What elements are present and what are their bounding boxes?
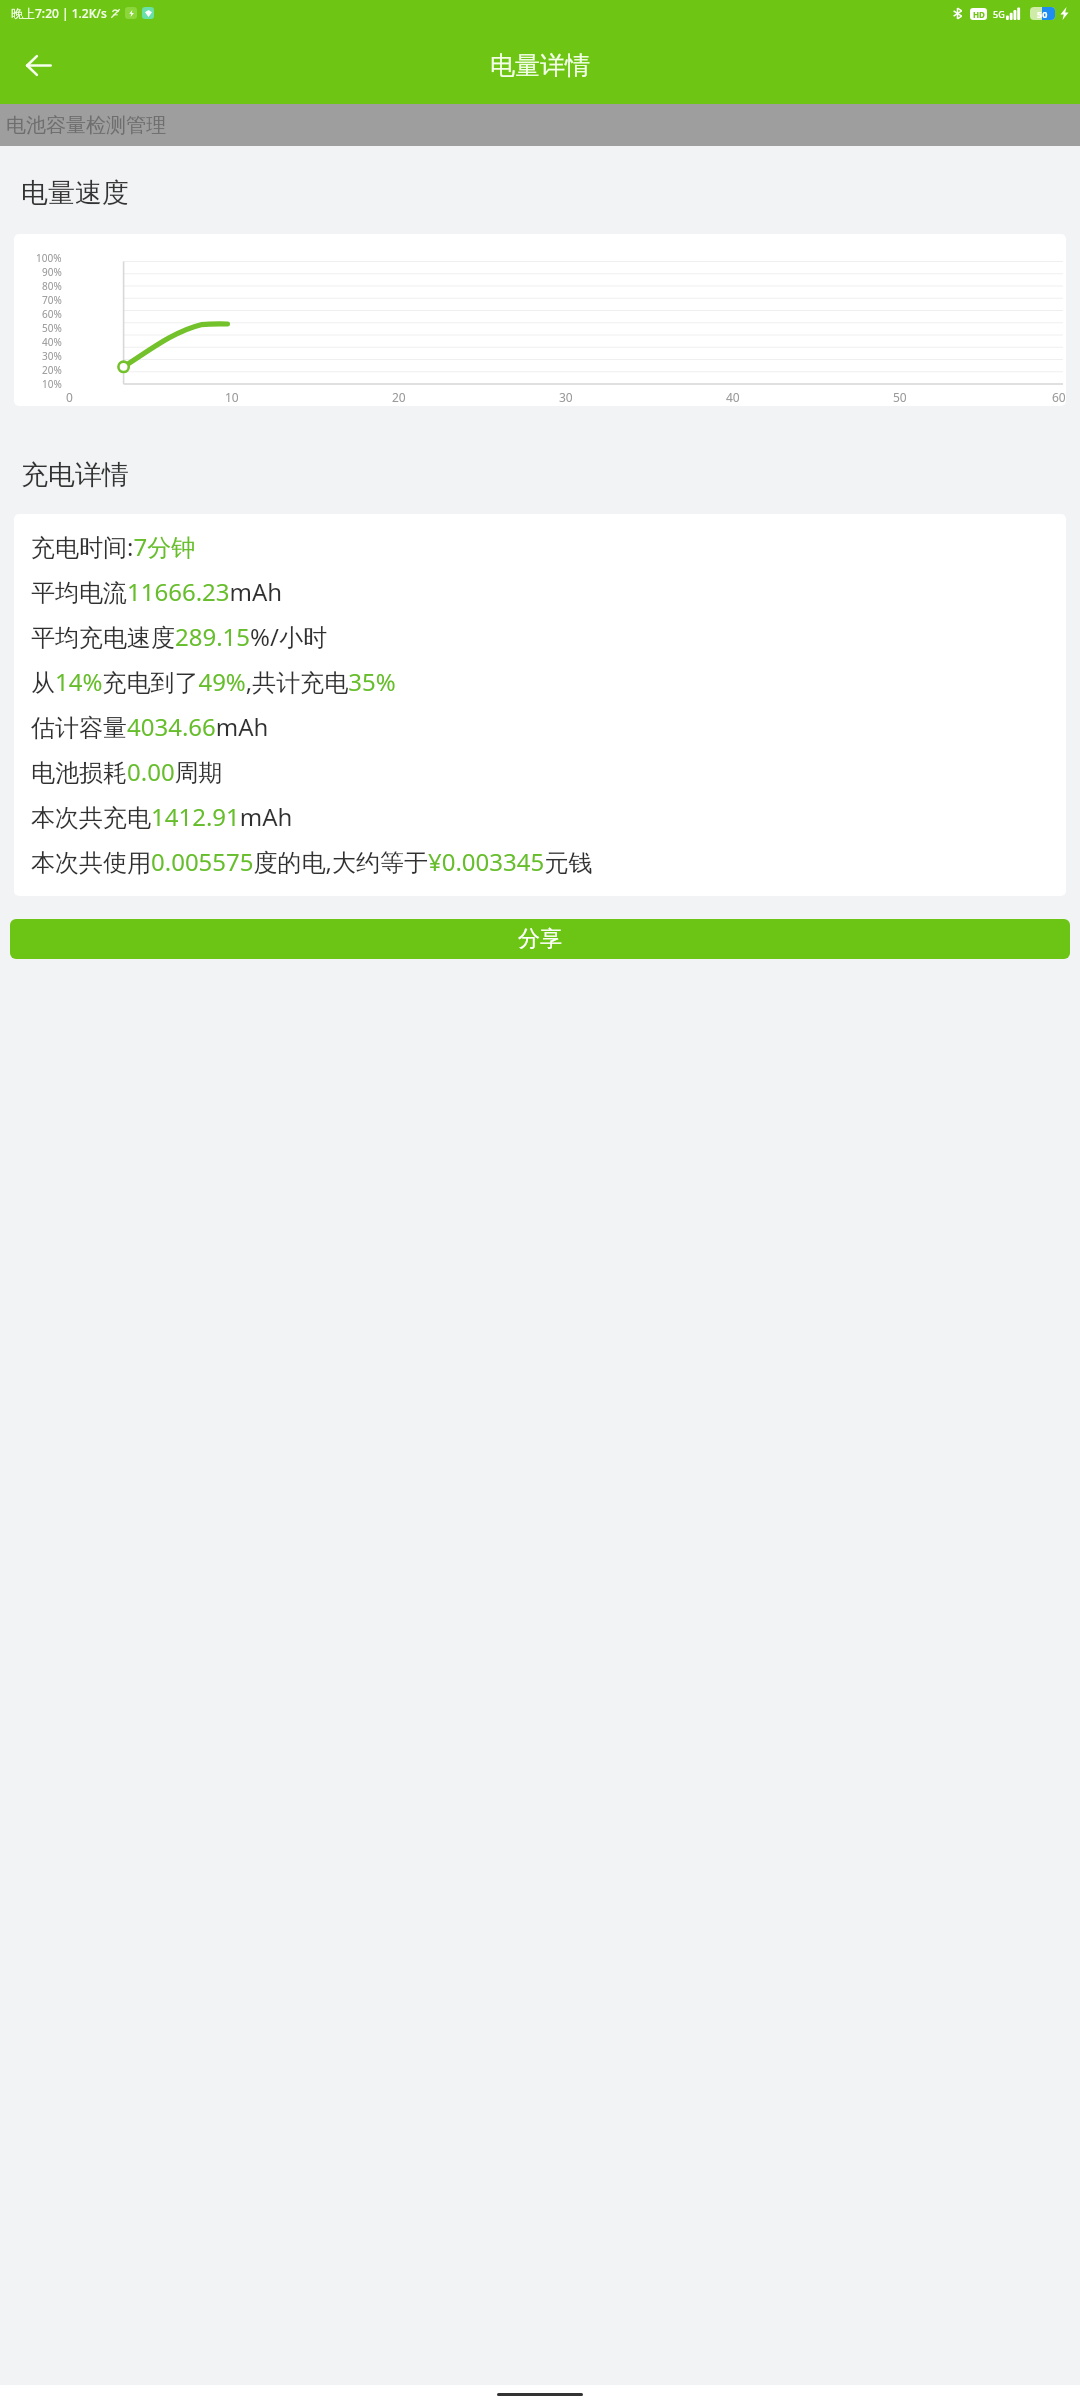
staticText: 估计容量4034.66mAh	[31, 710, 269, 743]
staticText: 5G	[993, 8, 1005, 20]
staticText: 50	[893, 389, 907, 405]
staticText: 0	[66, 389, 73, 405]
staticText: 电量速度	[21, 176, 129, 210]
staticText: 50%	[42, 321, 62, 335]
staticText: 20	[392, 389, 406, 405]
staticText: 70%	[42, 293, 62, 307]
staticText: 40%	[42, 335, 62, 349]
staticText: 电量详情	[490, 50, 590, 81]
staticText: 80%	[42, 279, 62, 293]
staticText: 分享	[518, 925, 562, 953]
staticText: 平均充电速度289.15%/小时	[31, 620, 327, 653]
staticText: 本次共使用0.005575度的电,大约等于¥0.003345元钱	[31, 845, 593, 878]
staticText: 充电时间:7分钟	[31, 530, 196, 563]
staticText: 30%	[42, 349, 62, 363]
staticText: 本次共充电1412.91mAh	[31, 800, 293, 833]
staticText: 60	[1052, 389, 1066, 405]
staticText: 充电详情	[21, 458, 129, 492]
staticText: 从14%充电到了49%,共计充电35%	[31, 665, 396, 698]
staticText: 30	[559, 389, 573, 405]
staticText: 10	[225, 389, 239, 405]
staticText: 平均电流11666.23mAh	[31, 575, 283, 608]
staticText: 20%	[42, 363, 62, 377]
staticText: 10%	[42, 377, 62, 391]
staticText: 40	[726, 389, 740, 405]
button[interactable]: 返回	[14, 41, 62, 89]
staticText: 60%	[42, 307, 62, 321]
button[interactable]: 分享	[10, 919, 1070, 959]
staticText: 电池损耗0.00周期	[31, 755, 223, 788]
staticText: 电池容量检测管理	[6, 113, 166, 138]
staticText: 50	[1037, 8, 1048, 20]
staticText: 100%	[36, 251, 62, 265]
staticText: HD	[973, 9, 985, 20]
staticText: 晚上7:20 | 1.2K/s	[11, 5, 107, 21]
staticText: 90%	[42, 265, 62, 279]
